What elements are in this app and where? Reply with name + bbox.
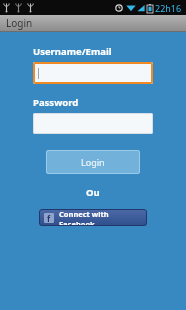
- staticText: Connect with Facebook: [59, 209, 142, 226]
- staticText: Login: [81, 156, 105, 168]
- staticText: Login: [6, 16, 33, 30]
- staticText: f: [47, 213, 51, 223]
- button[interactable]: Login: [46, 150, 140, 174]
- button[interactable]: f: [39, 209, 147, 226]
- staticText: 22h16: [155, 2, 182, 14]
- button[interactable]: [33, 62, 153, 84]
- staticText: Username/Email: [33, 45, 112, 58]
- button[interactable]: [33, 113, 153, 134]
- staticText: Ou: [86, 186, 100, 199]
- staticText: Password: [33, 96, 79, 109]
